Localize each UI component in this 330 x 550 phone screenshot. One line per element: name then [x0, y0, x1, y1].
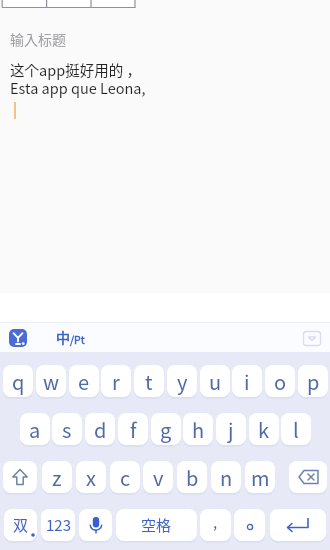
staticText: k — [258, 415, 270, 444]
button[interactable]: g — [151, 413, 181, 445]
staticText: g — [160, 415, 172, 444]
button[interactable]: 双 — [4, 509, 37, 541]
staticText: , — [213, 511, 218, 533]
button[interactable]: s — [52, 413, 82, 445]
button[interactable]: 中 — [56, 327, 85, 347]
staticText: z — [52, 463, 62, 492]
staticText: n — [220, 463, 233, 492]
button[interactable] — [270, 509, 326, 541]
button[interactable]: n — [211, 461, 241, 493]
button[interactable]: 123 — [41, 509, 75, 541]
staticText: x — [86, 463, 96, 492]
staticText: j — [228, 415, 234, 444]
staticText: /Pt — [70, 332, 85, 347]
button[interactable] — [289, 461, 327, 493]
button[interactable]: u — [200, 365, 230, 397]
staticText: 123 — [46, 514, 71, 536]
staticText: c — [120, 463, 131, 492]
button[interactable]: m — [245, 461, 275, 493]
button[interactable]: c — [110, 461, 140, 493]
button[interactable]: f — [118, 413, 148, 445]
staticText: u — [209, 367, 222, 396]
button[interactable]: x — [76, 461, 106, 493]
staticText: m — [251, 463, 270, 492]
button[interactable]: q — [3, 365, 33, 397]
button[interactable]: w — [36, 365, 66, 397]
staticText: f — [130, 415, 137, 444]
staticText: b — [186, 463, 199, 492]
staticText: v — [153, 463, 164, 492]
staticText: s — [62, 415, 72, 444]
staticText: o — [274, 367, 287, 396]
button[interactable]: , — [200, 509, 231, 541]
staticText: e — [78, 367, 90, 396]
staticText: 双 — [13, 514, 29, 536]
button[interactable]: r — [101, 365, 131, 397]
button[interactable]: e — [69, 365, 99, 397]
button[interactable]: z — [42, 461, 72, 493]
staticText: i — [244, 367, 250, 396]
button[interactable]: d — [85, 413, 115, 445]
staticText: a — [29, 415, 41, 444]
button[interactable]: o — [265, 365, 295, 397]
button[interactable]: h — [183, 413, 213, 445]
button[interactable]: v — [143, 461, 173, 493]
staticText: p — [307, 367, 320, 396]
staticText: Esta app que Leona, — [10, 77, 146, 98]
staticText: 中 — [56, 327, 70, 347]
staticText: w — [43, 367, 60, 396]
staticText: 输入标题 — [10, 29, 66, 49]
button[interactable]: p — [298, 365, 328, 397]
button[interactable]: b — [177, 461, 207, 493]
button[interactable]: 空格 — [116, 509, 197, 541]
button[interactable]: j — [216, 413, 246, 445]
button[interactable]: t — [134, 365, 164, 397]
button[interactable]: i — [232, 365, 262, 397]
staticText: r — [112, 367, 120, 396]
staticText: q — [12, 367, 25, 396]
button[interactable] — [9, 329, 27, 347]
button[interactable] — [79, 509, 112, 541]
staticText: y — [177, 367, 188, 396]
staticText: t — [145, 367, 153, 396]
button[interactable] — [234, 509, 265, 541]
button[interactable] — [303, 331, 321, 346]
button[interactable]: l — [281, 413, 311, 445]
button[interactable]: a — [20, 413, 50, 445]
staticText: h — [192, 415, 205, 444]
button[interactable] — [3, 461, 37, 493]
staticText: 这个app挺好用的 ， — [10, 59, 141, 80]
staticText: d — [94, 415, 107, 444]
staticText: 空格 — [141, 514, 172, 536]
staticText: l — [293, 415, 299, 444]
button[interactable]: k — [249, 413, 279, 445]
button[interactable]: y — [167, 365, 197, 397]
